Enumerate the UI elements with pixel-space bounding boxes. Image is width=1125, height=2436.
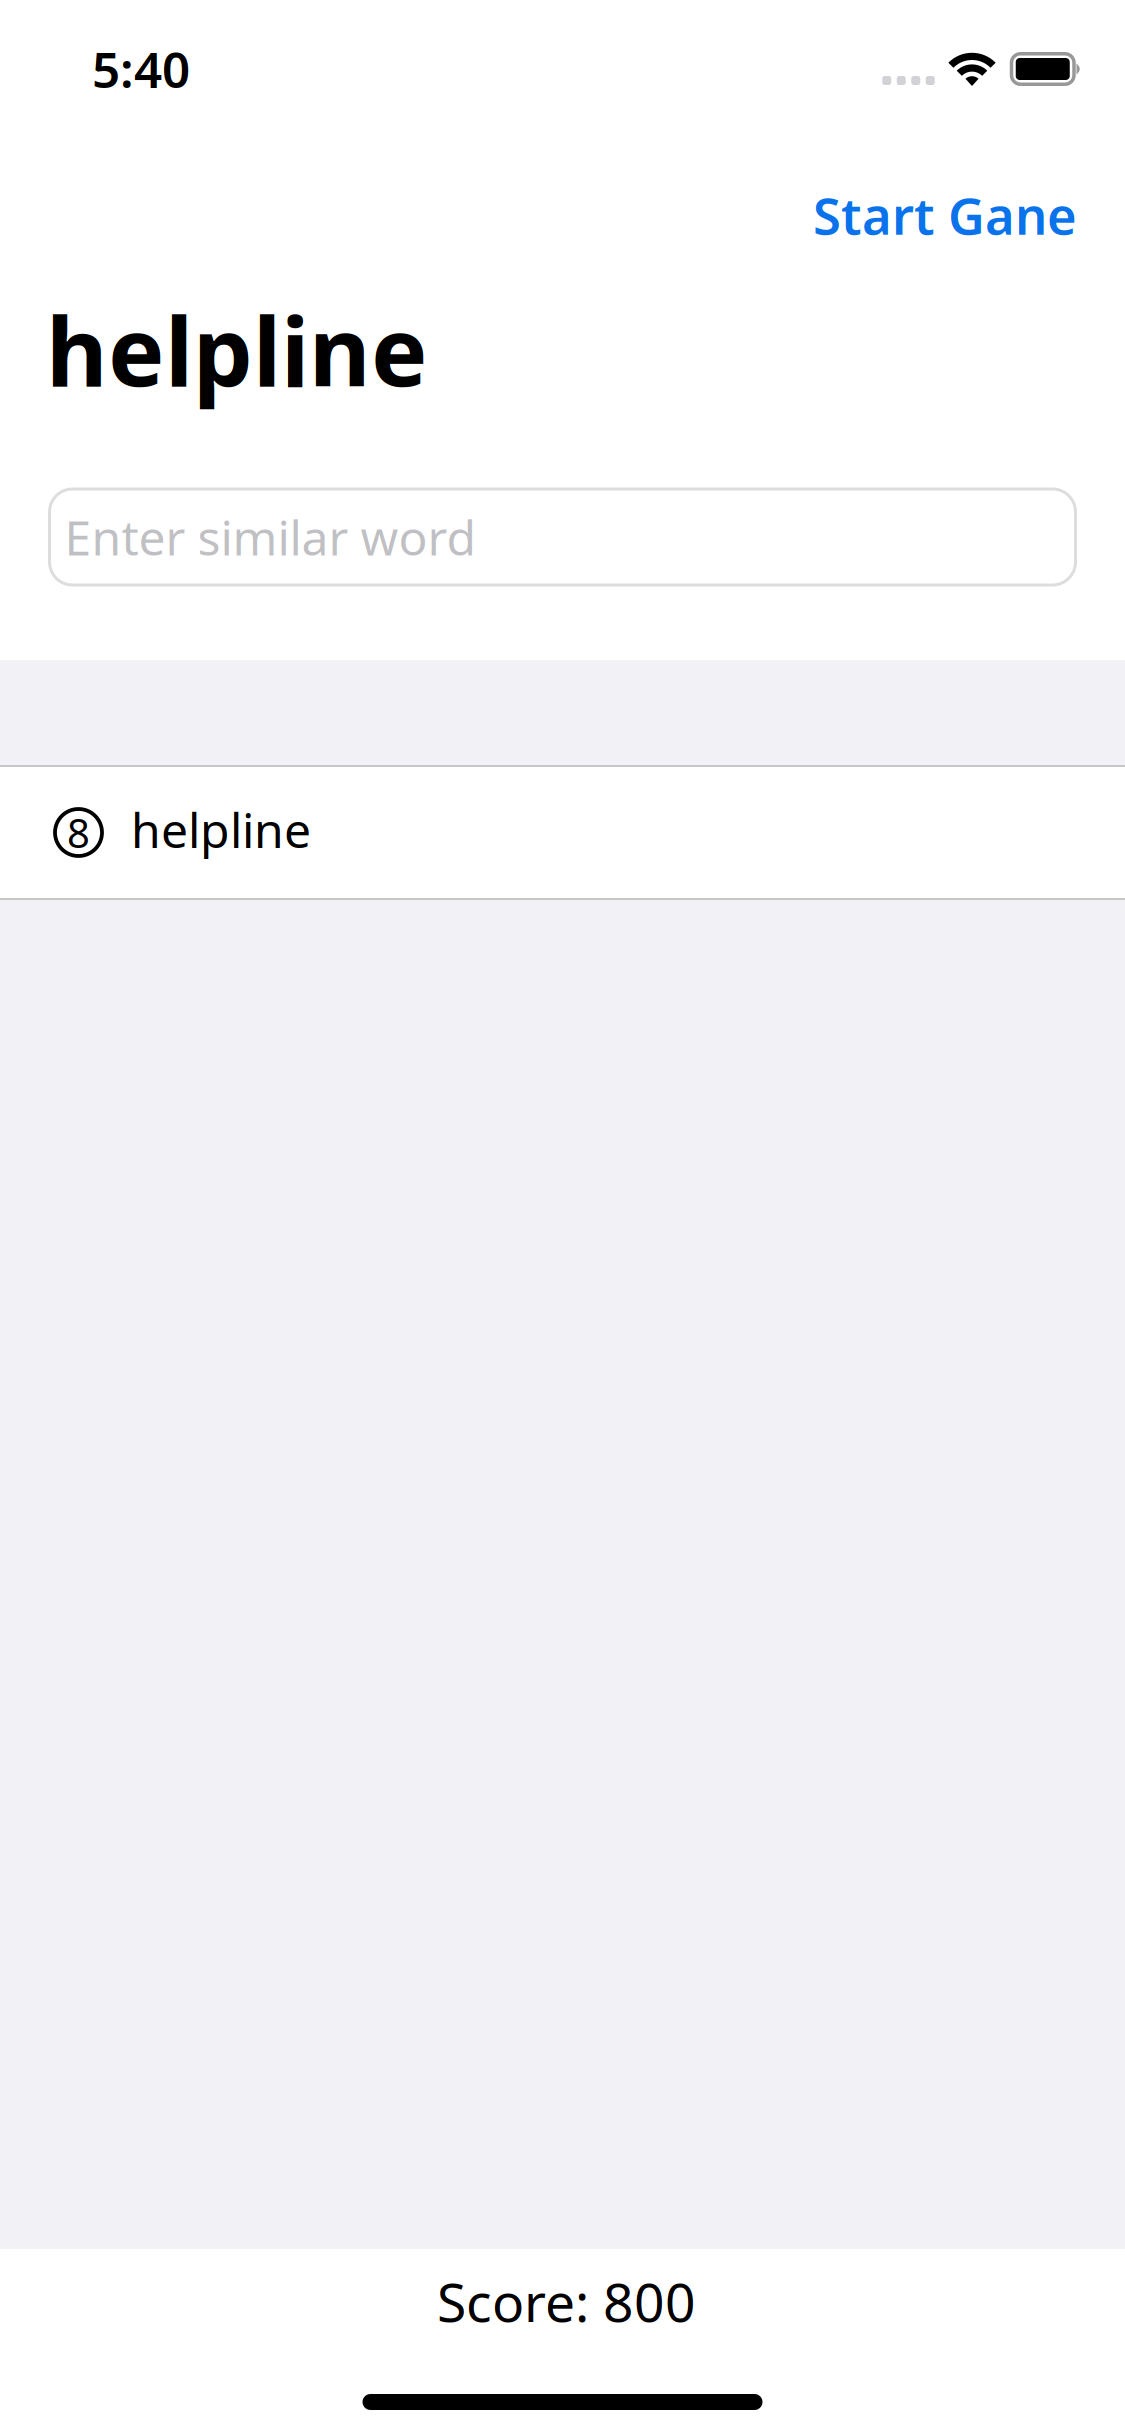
staticText: Score: 800: [437, 2266, 696, 2337]
button[interactable]: 8: [0, 767, 1125, 898]
staticText: 5:40: [92, 36, 190, 101]
button[interactable]: Enter similar word: [49, 489, 1075, 585]
button[interactable]: Start Gane: [800, 140, 1090, 256]
staticText: Enter similar word: [64, 505, 476, 569]
staticText: helpline: [46, 287, 428, 412]
staticText: 8: [67, 806, 90, 859]
staticText: helpline: [131, 798, 311, 861]
staticText: Start Gane: [813, 181, 1077, 249]
